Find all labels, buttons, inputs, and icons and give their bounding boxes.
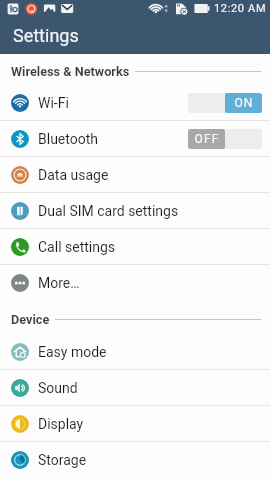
staticText: Wi-Fi <box>38 95 69 111</box>
button[interactable]: Settings <box>0 16 270 54</box>
staticText: Display <box>38 416 84 432</box>
staticText: OFF <box>194 132 220 146</box>
button[interactable]: Dual SIM card settings <box>0 193 270 229</box>
button[interactable]: Bluetooth <box>0 121 270 157</box>
staticText: 12:20 AM <box>214 2 267 15</box>
staticText: Wireless & Networks <box>11 64 130 79</box>
button[interactable]: Easy mode <box>0 334 270 370</box>
staticText: Device <box>11 312 50 327</box>
staticText: Bluetooth <box>38 131 98 147</box>
button[interactable]: Sound <box>0 370 270 406</box>
button[interactable]: Switch on <box>188 93 262 113</box>
staticText: Sound <box>38 380 78 396</box>
staticText: Settings <box>13 25 79 46</box>
button[interactable]: Data usage <box>0 157 270 193</box>
button[interactable]: Wi-Fi <box>0 85 270 121</box>
button[interactable]: Switch off <box>188 129 262 149</box>
button[interactable]: Call settings <box>0 229 270 265</box>
staticText: ON <box>234 96 254 110</box>
staticText: Data usage <box>38 167 109 183</box>
button[interactable]: Storage <box>0 442 270 478</box>
staticText: Call settings <box>38 239 116 255</box>
staticText: Dual SIM card settings <box>38 203 179 219</box>
staticText: Storage <box>38 452 87 468</box>
staticText: More… <box>38 275 80 291</box>
button[interactable]: More… <box>0 265 270 301</box>
button[interactable]: Display <box>0 406 270 442</box>
staticText: Easy mode <box>38 344 107 360</box>
